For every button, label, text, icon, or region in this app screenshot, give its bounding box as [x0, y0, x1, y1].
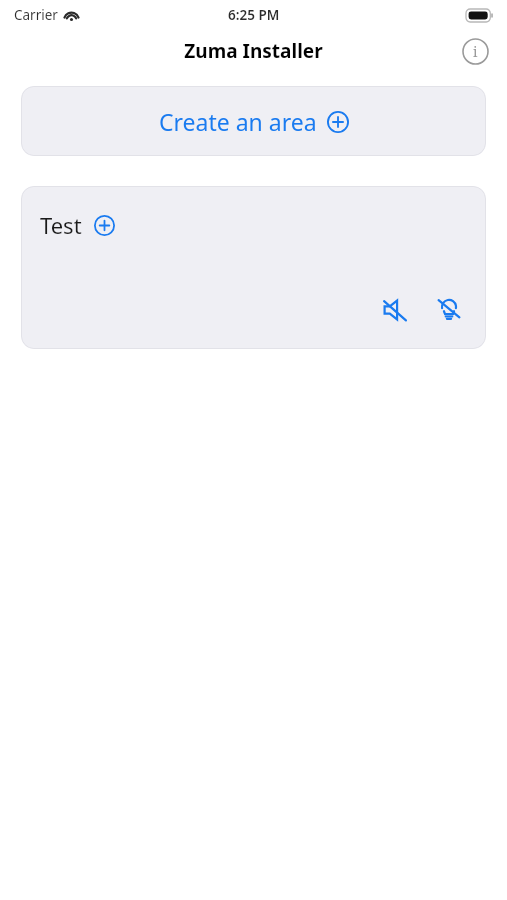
button[interactable]: Info: [459, 35, 491, 67]
staticText: Create an area: [159, 106, 317, 137]
staticText: i: [473, 42, 478, 61]
staticText: Test: [40, 210, 82, 240]
staticText: Zuma Installer: [184, 38, 323, 64]
button[interactable]: Lights off: [432, 293, 466, 327]
staticText: Carrier: [14, 6, 58, 24]
button[interactable]: Mute: [378, 293, 412, 327]
button[interactable]: Test: [21, 186, 486, 349]
button[interactable]: Add device to Test: [91, 212, 117, 238]
button[interactable]: Create an area: [21, 86, 486, 156]
staticText: 6:25 PM: [228, 6, 280, 24]
